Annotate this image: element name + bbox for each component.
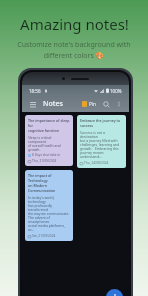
button[interactable]: The impact of Technology on Modern Commu… xyxy=(25,170,73,241)
staticText: Amazing notes! xyxy=(20,14,129,34)
staticText: Notes xyxy=(43,99,63,109)
staticText: 18:56 xyxy=(29,88,41,94)
staticText: Customize note's background with differe… xyxy=(17,40,131,60)
staticText: Thu, 24/08/2024 xyxy=(84,161,109,165)
staticText: Pin xyxy=(89,101,96,107)
staticText: 8 Days shut take in xyxy=(32,153,61,157)
staticText: Embrace the journey to success xyxy=(80,118,121,128)
staticText: Thu, 21/09/2024 xyxy=(32,159,57,163)
button[interactable]: Open navigation drawer xyxy=(27,99,38,110)
button[interactable]: Embrace the journey to success xyxy=(77,115,126,168)
button[interactable]: Search xyxy=(101,99,112,110)
staticText: Sat, 21/09/2024 xyxy=(32,234,56,238)
button[interactable]: Create new note xyxy=(106,289,123,296)
staticText: Success is not a destination but a journ… xyxy=(80,130,123,159)
staticText: Sleep is critical component of overall h… xyxy=(28,135,70,152)
button[interactable]: The importance of sleep for cognitive fu… xyxy=(25,115,73,166)
staticText: The impact of Technology on Modern Commu… xyxy=(28,173,70,193)
button[interactable]: Pin xyxy=(81,100,97,108)
button[interactable]: More options xyxy=(114,99,124,109)
staticText: In today's world, technology has profoun… xyxy=(28,195,70,232)
staticText: The importance of sleep for cognitive fu… xyxy=(28,118,70,133)
staticText: 100% xyxy=(110,88,122,94)
